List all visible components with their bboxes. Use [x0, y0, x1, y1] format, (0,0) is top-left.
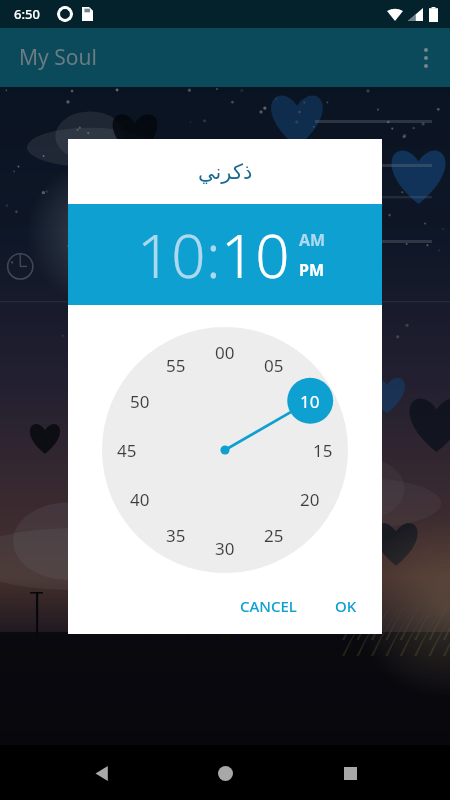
staticText: 05: [264, 354, 284, 377]
staticText: 55: [166, 354, 186, 377]
button[interactable]: 30: [202, 525, 248, 571]
staticText: CANCEL: [240, 596, 297, 616]
staticText: :: [206, 214, 221, 296]
staticText: 25: [264, 524, 284, 547]
button[interactable]: AM: [299, 229, 326, 251]
button[interactable]: 55: [153, 342, 199, 388]
button[interactable]: 10: [221, 214, 290, 296]
button[interactable]: PM: [299, 259, 325, 281]
button[interactable]: 45: [104, 427, 150, 473]
staticText: 35: [166, 524, 186, 547]
staticText: 50: [130, 390, 150, 413]
button[interactable]: 50: [117, 378, 163, 424]
staticText: 40: [130, 488, 150, 511]
button[interactable]: 10: [137, 214, 206, 296]
button[interactable]: Home: [201, 749, 249, 797]
button[interactable]: More options: [402, 34, 450, 82]
staticText: 6:50: [14, 5, 40, 23]
staticText: ذكرني: [198, 160, 253, 184]
staticText: 20: [300, 488, 320, 511]
staticText: 15: [313, 439, 333, 462]
button[interactable]: 20: [287, 476, 333, 522]
button[interactable]: OK: [324, 587, 368, 625]
button[interactable]: 35: [153, 512, 199, 558]
staticText: My Soul: [19, 43, 97, 72]
button[interactable]: Recents: [326, 749, 374, 797]
staticText: 10: [300, 390, 320, 413]
button[interactable]: 05: [251, 342, 297, 388]
staticText: 30: [215, 537, 235, 560]
staticText: OK: [335, 596, 357, 616]
button[interactable]: 00: [202, 329, 248, 375]
button[interactable]: 15: [300, 427, 346, 473]
button[interactable]: CANCEL: [229, 587, 308, 625]
button[interactable]: 10: [287, 378, 333, 424]
staticText: 45: [117, 439, 137, 462]
staticText: 00: [215, 341, 235, 364]
button[interactable]: 25: [251, 512, 297, 558]
button[interactable]: Back: [77, 749, 125, 797]
button[interactable]: 40: [117, 476, 163, 522]
